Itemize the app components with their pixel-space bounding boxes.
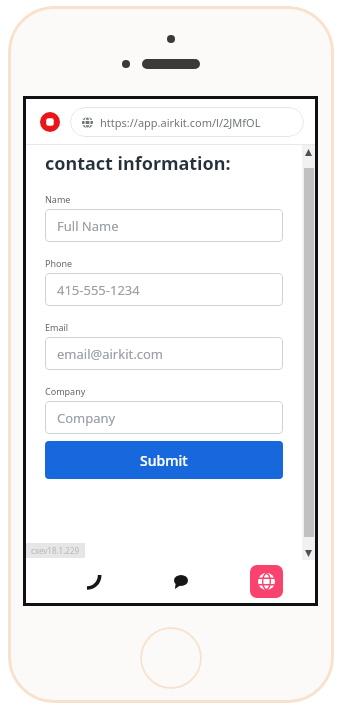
staticText: contact information: xyxy=(45,151,231,176)
button[interactable]: Chat xyxy=(163,564,199,600)
staticText: 415-555-1234 xyxy=(57,281,140,299)
button[interactable]: https://app.airkit.com/l/2JMfOL xyxy=(70,107,304,137)
staticText: Phone xyxy=(45,257,73,269)
button[interactable]: Submit xyxy=(45,441,283,479)
staticText: cxev18.1.229 xyxy=(31,545,80,556)
button[interactable]: Company xyxy=(45,401,283,434)
button[interactable]: email@airkit.com xyxy=(45,337,283,370)
staticText: Name xyxy=(45,193,71,205)
button[interactable]: Scroll up xyxy=(302,145,315,159)
button[interactable]: Call xyxy=(76,564,112,600)
staticText: Full Name xyxy=(57,217,119,235)
staticText: Submit xyxy=(140,451,188,470)
staticText: Company xyxy=(45,385,86,397)
button[interactable]: Scroll down xyxy=(302,546,315,560)
button[interactable]: 415-555-1234 xyxy=(45,273,283,306)
staticText: Company xyxy=(57,409,116,427)
staticText: Email xyxy=(45,321,69,333)
button[interactable]: Stop loading xyxy=(39,111,61,133)
button[interactable]: Full Name xyxy=(45,209,283,242)
staticText: email@airkit.com xyxy=(57,345,163,363)
staticText: https://app.airkit.com/l/2JMfOL xyxy=(100,115,261,130)
button[interactable]: Language xyxy=(250,565,283,598)
button[interactable]: Home xyxy=(140,627,202,689)
